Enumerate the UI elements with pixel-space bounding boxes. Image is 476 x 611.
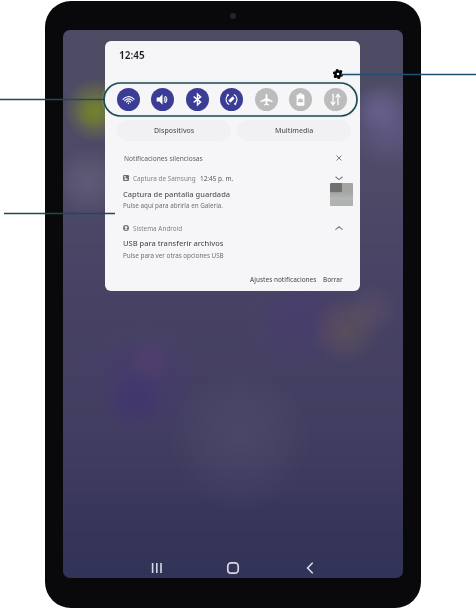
- button[interactable]: Ahorro de bateria: [289, 88, 312, 111]
- button[interactable]: [119, 185, 324, 212]
- button[interactable]: Wi-Fi: [117, 88, 140, 111]
- button[interactable]: Datos moviles: [324, 88, 347, 111]
- button[interactable]: Sonido: [151, 88, 174, 111]
- button[interactable]: Borrar notificaciones silenciosas: [334, 153, 344, 163]
- staticText: Pulse aquí para abrirla en Galería.: [123, 201, 223, 210]
- button[interactable]: Dispositivos: [117, 120, 231, 141]
- button[interactable]: Ajustes: [333, 69, 343, 79]
- staticText: Dispositivos: [154, 126, 195, 136]
- staticText: Captura de pantalla guardada: [123, 189, 231, 199]
- button[interactable]: Contraer notificación: [334, 223, 344, 233]
- staticText: Sistema Android: [133, 224, 183, 233]
- button[interactable]: Rotacion automatica: [220, 88, 243, 111]
- button[interactable]: Expandir notificación: [334, 173, 344, 183]
- staticText: 12:45 p. m.: [200, 174, 234, 183]
- staticText: USB para transferir archivos: [123, 238, 224, 248]
- button[interactable]: Recientes: [144, 555, 170, 578]
- staticText: Multimedia: [275, 126, 314, 136]
- button[interactable]: Multimedia: [237, 120, 351, 141]
- staticText: Captura de Samsung: [133, 174, 196, 183]
- staticText: Notificaciones silenciosas: [124, 154, 203, 163]
- staticText: Ajustes notificaciones: [250, 275, 317, 284]
- button[interactable]: Modo avion: [255, 88, 278, 111]
- button[interactable]: Ajustes notificaciones: [249, 271, 318, 288]
- staticText: 12:45: [119, 48, 145, 62]
- staticText: Borrar: [323, 275, 343, 284]
- button[interactable]: Bluetooth: [186, 88, 209, 111]
- button[interactable]: Inicio: [220, 555, 246, 578]
- button[interactable]: [119, 235, 339, 262]
- button[interactable]: Borrar: [321, 271, 345, 288]
- staticText: Pulse para ver otras opciones USB: [123, 251, 224, 260]
- button[interactable]: Atrás: [297, 555, 323, 578]
